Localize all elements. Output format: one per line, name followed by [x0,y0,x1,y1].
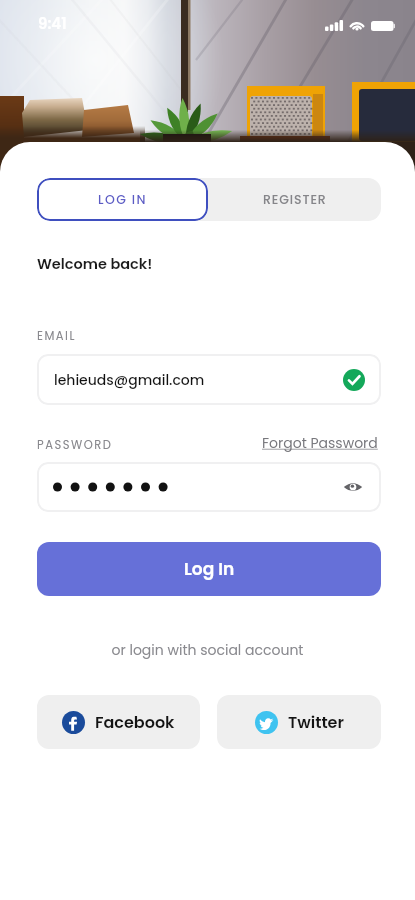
staticText: LOG IN [98,191,147,208]
staticText: Log In [184,557,235,581]
staticText: lehieuds@gmail.com [54,370,205,390]
button[interactable]: Forgot Password [262,433,378,453]
staticText: or login with social account [0,640,415,660]
staticText: Welcome back! [37,254,153,274]
staticText: Facebook [95,711,175,733]
button[interactable]: Facebook [37,695,200,749]
button[interactable]: Show password [339,473,367,501]
staticText: PASSWORD [37,437,113,453]
button[interactable]: REGISTER [208,178,381,221]
staticText: EMAIL [37,328,76,344]
button[interactable]: LOG IN [37,178,208,221]
staticText: 9:41 [38,13,67,34]
button[interactable]: lehieuds@gmail.com [37,354,381,405]
staticText: Twitter [288,711,344,733]
button[interactable]: Log In [37,542,381,596]
button[interactable]: Show password [37,462,381,512]
button[interactable]: Twitter [217,695,381,749]
staticText: REGISTER [263,191,327,208]
